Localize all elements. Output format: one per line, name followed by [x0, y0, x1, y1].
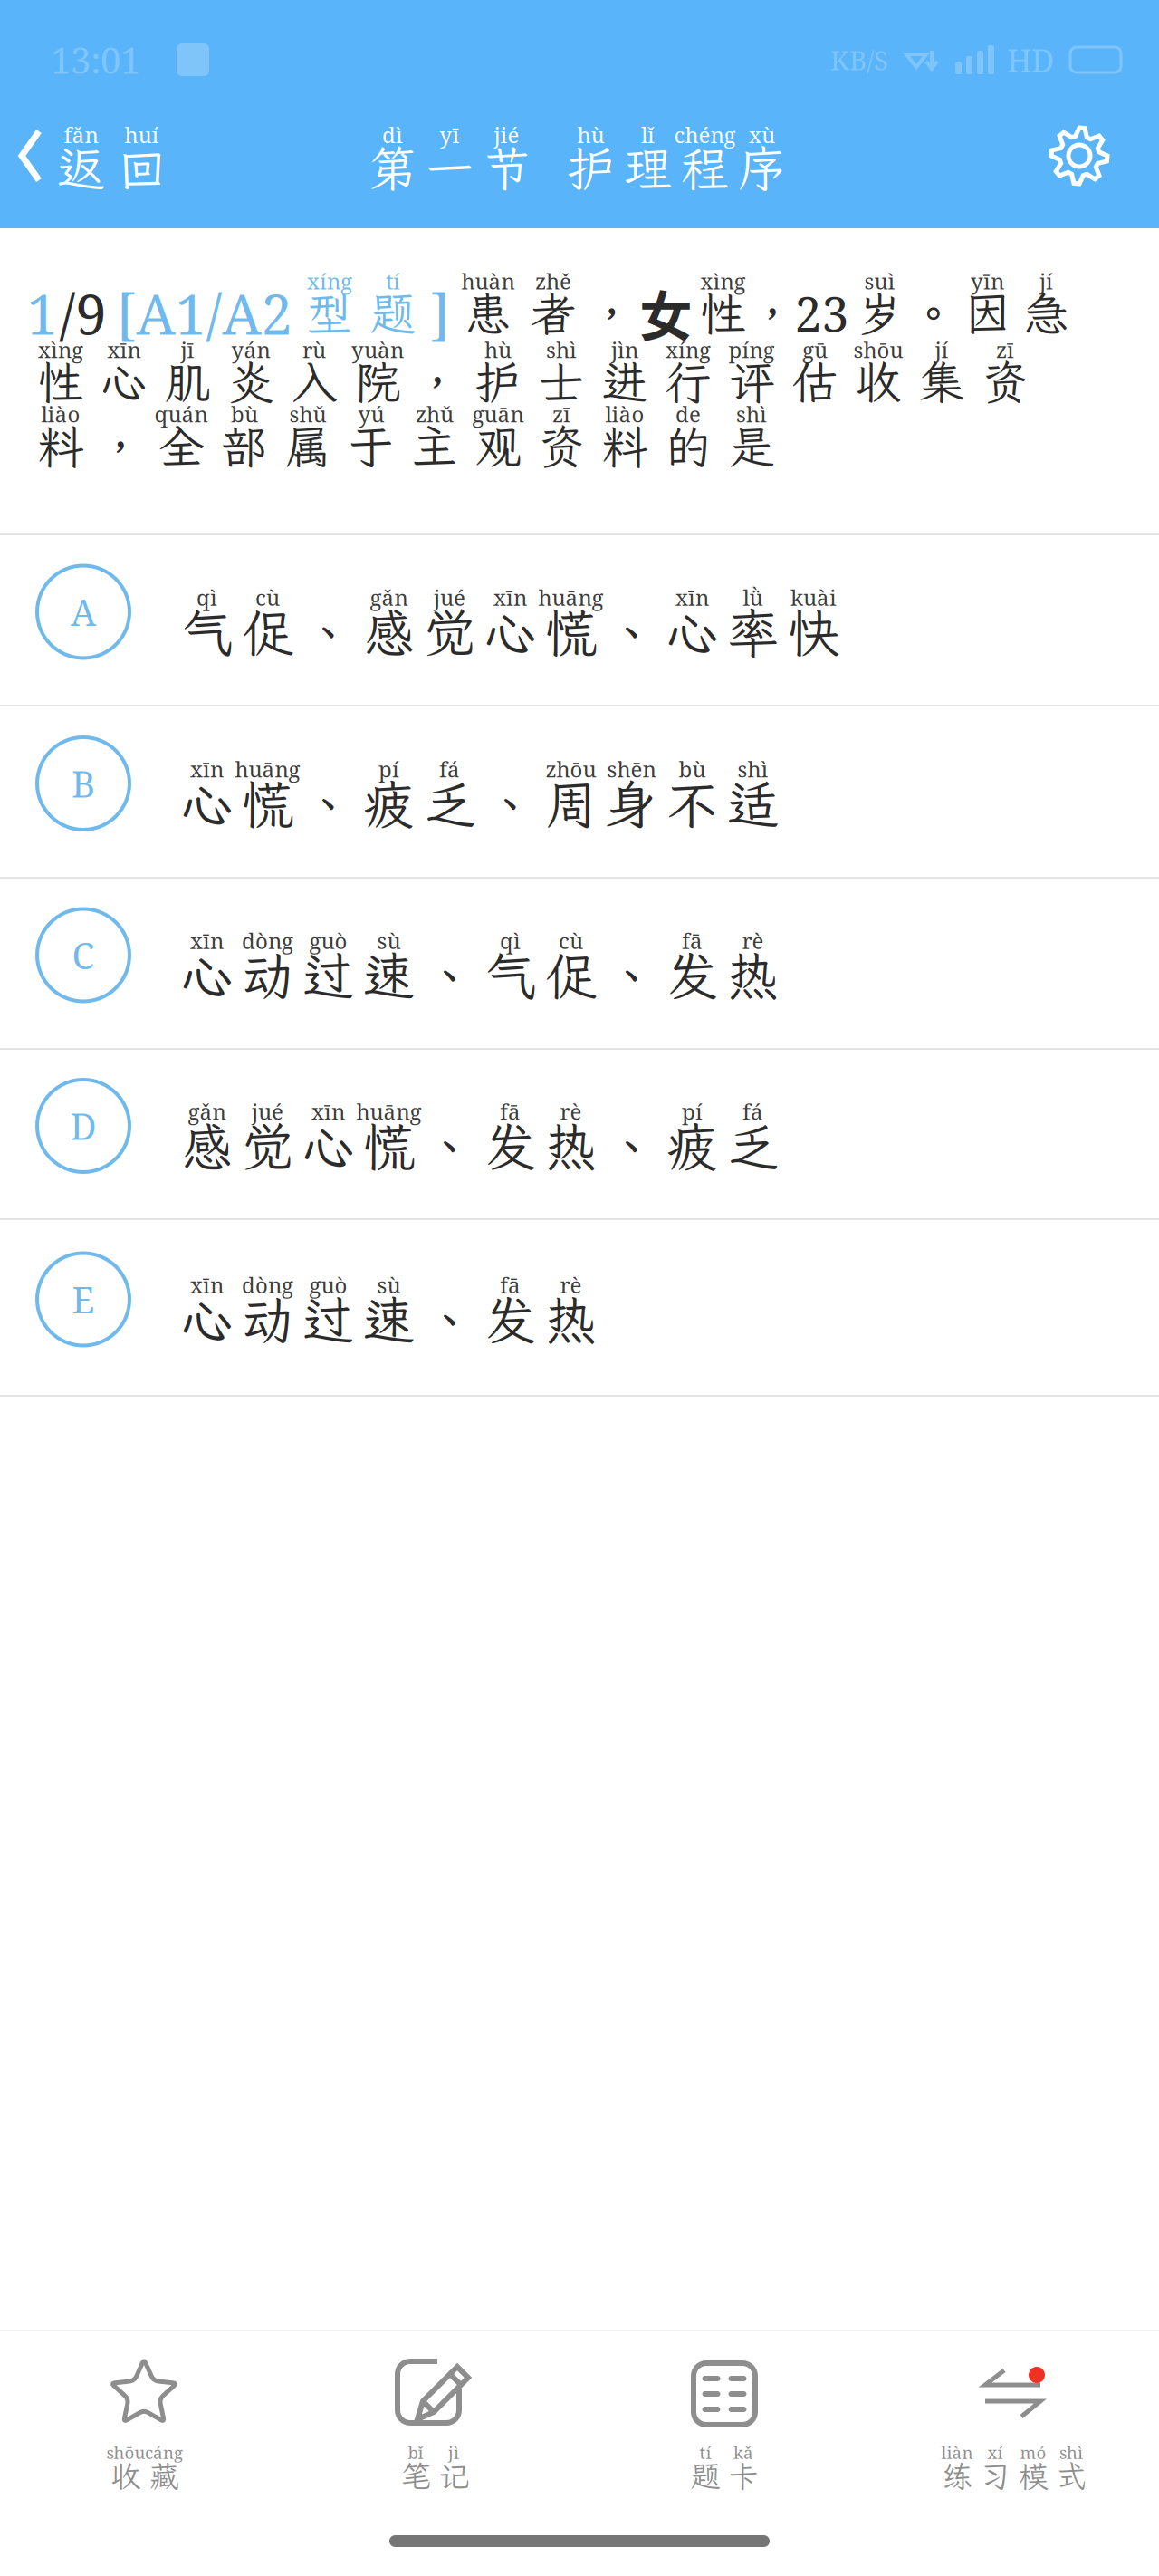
staticText: 式: [1056, 2456, 1086, 2496]
staticText: 主: [412, 416, 458, 476]
button[interactable]: Notes: [290, 2331, 579, 2502]
staticText: yuàn: [351, 335, 404, 364]
staticText: hù: [577, 120, 604, 150]
button[interactable]: Settings: [1039, 126, 1159, 186]
staticText: 热: [545, 1285, 597, 1354]
staticText: huāng: [235, 754, 300, 784]
staticText: 者: [530, 283, 576, 343]
staticText: yán: [231, 335, 270, 364]
staticText: C: [72, 930, 95, 980]
button[interactable]: D: [0, 1050, 1159, 1218]
staticText: 速: [363, 1285, 415, 1354]
staticText: 心: [484, 598, 536, 666]
staticText: 心: [666, 598, 718, 666]
staticText: huàn: [461, 266, 515, 296]
staticText: xìng: [700, 266, 746, 296]
staticText: fā: [500, 1270, 521, 1300]
staticText: shì: [736, 399, 767, 429]
staticText: 护: [475, 351, 521, 412]
staticText: xīn: [107, 335, 141, 364]
staticText: dòng: [242, 1270, 293, 1300]
staticText: 快: [788, 598, 839, 666]
staticText: mó: [1020, 2441, 1046, 2464]
staticText: xìng: [38, 335, 83, 364]
staticText: 乏: [424, 770, 475, 838]
staticText: liào: [605, 399, 644, 429]
staticText: 入: [291, 351, 337, 412]
staticText: bù: [679, 754, 706, 784]
staticText: shōu: [106, 2441, 145, 2464]
staticText: 第: [369, 136, 417, 200]
staticText: 慌: [363, 1112, 415, 1180]
staticText: 发: [666, 941, 718, 1010]
staticText: fā: [500, 1097, 521, 1126]
staticText: pí: [682, 1097, 703, 1126]
button[interactable]: B: [0, 706, 1159, 877]
staticText: 集: [919, 351, 965, 412]
staticText: 资: [538, 416, 584, 476]
staticText: pí: [378, 754, 399, 784]
staticText: 记: [439, 2456, 469, 2496]
staticText: kǎ: [733, 2441, 753, 2464]
staticText: xīn: [190, 926, 224, 955]
staticText: D: [70, 1101, 96, 1151]
staticText: tí: [386, 266, 400, 296]
staticText: 疲: [363, 770, 415, 838]
staticText: lǐ: [641, 120, 655, 150]
staticText: 女: [639, 275, 693, 352]
staticText: 身: [606, 770, 657, 838]
staticText: 、: [606, 598, 657, 666]
staticText: jī: [181, 335, 194, 364]
staticText: qì: [500, 926, 521, 955]
staticText: 、: [302, 770, 354, 838]
staticText: ，: [589, 283, 635, 343]
staticText: 感: [363, 598, 415, 666]
staticText: 模: [1018, 2456, 1048, 2496]
staticText: 性: [700, 283, 746, 343]
staticText: shì: [546, 335, 577, 364]
button[interactable]: A: [0, 535, 1159, 705]
button[interactable]: E: [0, 1220, 1159, 1395]
staticText: 于: [348, 416, 394, 476]
button[interactable]: C: [0, 879, 1159, 1048]
staticText: KB/S: [830, 42, 888, 78]
staticText: 习: [980, 2456, 1010, 2496]
staticText: 的: [665, 416, 711, 476]
staticText: sù: [377, 1270, 401, 1300]
staticText: A: [71, 587, 96, 637]
staticText: 资: [982, 351, 1028, 412]
staticText: ，: [750, 283, 796, 343]
staticText: zhě: [535, 266, 571, 296]
staticText: 观: [475, 416, 521, 476]
staticText: cù: [559, 926, 583, 955]
staticText: fā: [682, 926, 703, 955]
staticText: 进: [602, 351, 648, 412]
button[interactable]: Practice mode: [869, 2331, 1159, 2502]
staticText: 。: [910, 283, 957, 343]
button[interactable]: Question card: [579, 2331, 869, 2502]
staticText: 发: [484, 1285, 536, 1354]
button[interactable]: fǎn: [0, 123, 183, 189]
staticText: 节: [483, 136, 531, 200]
staticText: xīn: [190, 754, 224, 784]
staticText: shì: [738, 754, 768, 784]
button[interactable]: Favorites: [0, 2331, 290, 2502]
staticText: 属: [285, 416, 331, 476]
staticText: tí: [699, 2441, 711, 2464]
staticText: cù: [255, 583, 280, 612]
staticText: 觉: [242, 1112, 293, 1180]
staticText: 藏: [149, 2456, 179, 2496]
staticText: guò: [309, 926, 347, 955]
staticText: píng: [728, 335, 775, 364]
staticText: 动: [242, 1285, 293, 1354]
staticText: guān: [472, 399, 524, 429]
staticText: chéng: [674, 120, 736, 150]
staticText: 行: [665, 351, 711, 412]
staticText: 评: [728, 351, 775, 412]
staticText: HD: [1007, 38, 1054, 81]
staticText: 回: [118, 136, 166, 200]
staticText: 士: [538, 351, 584, 412]
staticText: zhǔ: [416, 399, 454, 429]
staticText: 不: [666, 770, 718, 838]
